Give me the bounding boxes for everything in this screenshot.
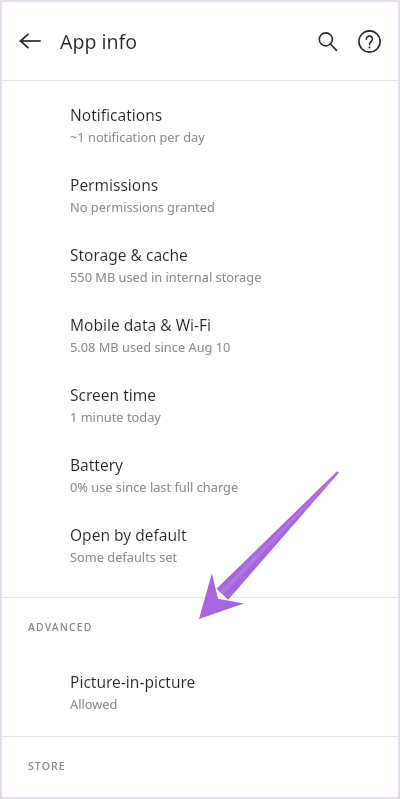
staticText: Open by default — [70, 524, 187, 545]
staticText: Permissions — [70, 174, 159, 195]
button[interactable]: Permissions — [2, 159, 398, 229]
staticText: Mobile data & Wi-Fi — [70, 314, 212, 335]
button[interactable]: Battery — [2, 439, 398, 509]
staticText: Notifications — [70, 104, 163, 125]
staticText: App info — [60, 28, 138, 55]
button[interactable]: Screen time — [2, 369, 398, 439]
staticText: Screen time — [70, 384, 156, 405]
staticText: Some defaults set — [70, 548, 178, 565]
staticText: ~1 notification per day — [70, 128, 205, 145]
button[interactable]: Mobile data & Wi-Fi — [2, 299, 398, 369]
staticText: Picture-in-picture — [70, 671, 196, 692]
staticText: 5.08 MB used since Aug 10 — [70, 338, 231, 355]
button[interactable]: Picture-in-picture — [2, 656, 398, 726]
staticText: 550 MB used in internal storage — [70, 268, 262, 285]
staticText: 1 minute today — [70, 408, 161, 425]
button[interactable]: Notifications — [2, 89, 398, 159]
button[interactable]: Open by default — [2, 509, 398, 579]
button[interactable]: Help — [348, 20, 390, 62]
staticText: STORE — [28, 759, 66, 773]
button[interactable]: Search — [306, 20, 348, 62]
staticText: ADVANCED — [28, 620, 93, 634]
staticText: Battery — [70, 454, 124, 475]
staticText: Storage & cache — [70, 244, 188, 265]
staticText: No permissions granted — [70, 198, 215, 215]
staticText: 0% use since last full charge — [70, 478, 239, 495]
staticText: Allowed — [70, 695, 118, 712]
button[interactable]: Storage & cache — [2, 229, 398, 299]
button[interactable]: Back — [12, 23, 48, 59]
